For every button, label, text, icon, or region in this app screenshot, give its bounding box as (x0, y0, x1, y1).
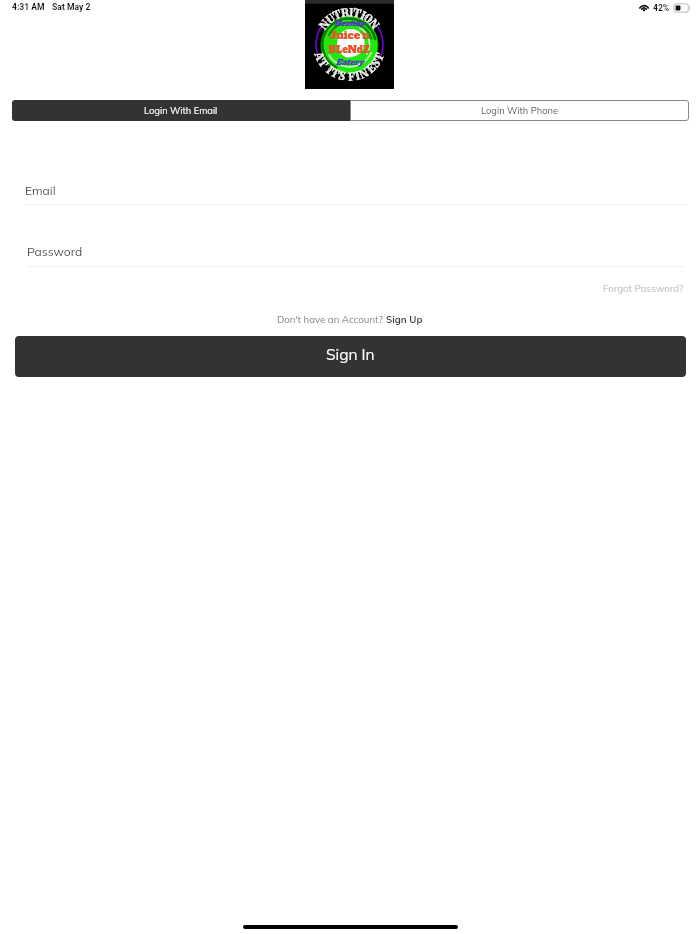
staticText: 4:31 AM (12, 2, 45, 12)
button[interactable]: Login With Email (12, 100, 350, 121)
staticText: Email (25, 183, 56, 198)
button[interactable]: Email (25, 178, 687, 205)
staticText: Login With Email (144, 105, 218, 117)
button[interactable]: Sign In (15, 336, 686, 377)
staticText: Sign Up (386, 313, 423, 325)
other: Battery 42 percent (673, 3, 691, 13)
staticText: 42% (653, 3, 670, 13)
staticText: Login With Phone (481, 105, 559, 117)
button[interactable]: Sign Up (386, 313, 423, 325)
button[interactable]: Forgot Password? (572, 279, 684, 297)
staticText: Sign In (326, 345, 375, 364)
button[interactable]: Login With Phone (350, 100, 689, 121)
staticText: Sat May 2 (52, 2, 91, 12)
button[interactable]: Password (28, 240, 683, 267)
staticText: Forgot Password? (603, 282, 684, 294)
staticText: Don't have an Account? (277, 313, 386, 325)
staticText: Password (27, 244, 83, 259)
